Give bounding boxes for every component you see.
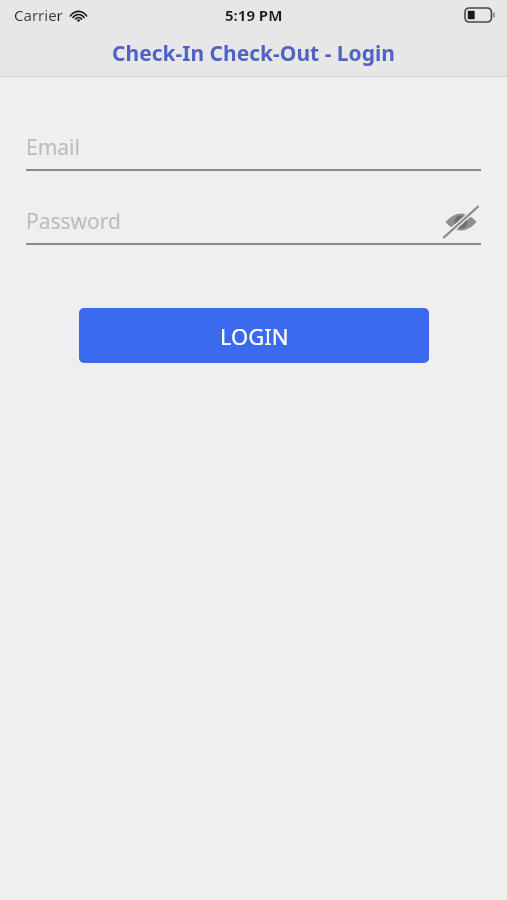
staticText: Password [26, 207, 121, 236]
staticText: 5:19 PM [225, 5, 283, 25]
button[interactable]: Password [26, 204, 481, 245]
staticText: Check-In Check-Out - Login [112, 39, 395, 68]
button[interactable]: Show password [441, 204, 481, 239]
button[interactable]: Email [26, 130, 481, 171]
staticText: Carrier [14, 5, 63, 25]
staticText: LOGIN [220, 321, 289, 351]
button[interactable]: LOGIN [79, 308, 429, 363]
staticText: Email [26, 133, 80, 162]
